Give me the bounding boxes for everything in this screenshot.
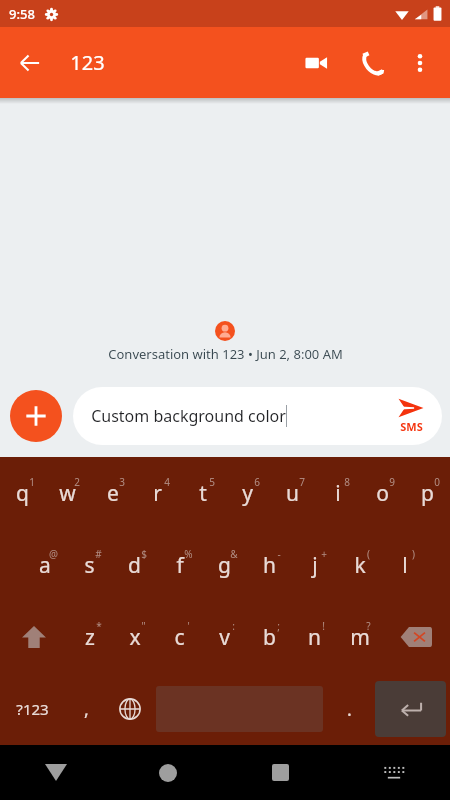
button[interactable]: & bbox=[202, 529, 247, 601]
staticText: o bbox=[376, 479, 389, 508]
staticText: 7 bbox=[299, 475, 305, 489]
button[interactable]: 6 bbox=[225, 457, 270, 529]
staticText: k bbox=[354, 551, 366, 580]
staticText: r bbox=[153, 479, 162, 508]
staticText: 1 bbox=[29, 475, 35, 489]
staticText: @ bbox=[49, 547, 58, 561]
button[interactable]: 1 bbox=[0, 457, 45, 529]
staticText: b bbox=[263, 623, 276, 652]
staticText: . bbox=[347, 697, 352, 722]
staticText: + bbox=[321, 547, 327, 561]
button[interactable]: @ bbox=[22, 529, 67, 601]
button[interactable]: ; bbox=[247, 601, 292, 673]
button[interactable]: Add attachment bbox=[10, 390, 62, 442]
button[interactable]: - bbox=[247, 529, 292, 601]
staticText: ) bbox=[412, 547, 415, 561]
button[interactable]: 4 bbox=[135, 457, 180, 529]
button[interactable]: Back bbox=[6, 39, 54, 87]
staticText: 0 bbox=[434, 475, 440, 489]
staticText: 2 bbox=[74, 475, 80, 489]
staticText: 5 bbox=[209, 475, 215, 489]
button[interactable]: Shift bbox=[0, 601, 67, 673]
button[interactable]: Call bbox=[348, 39, 396, 87]
staticText: l bbox=[402, 551, 408, 580]
staticText: : bbox=[232, 619, 235, 633]
staticText: y bbox=[242, 479, 253, 508]
staticText: e bbox=[107, 479, 119, 508]
button[interactable]: Hide keyboard bbox=[0, 745, 112, 800]
staticText: * bbox=[96, 619, 102, 633]
staticText: ?123 bbox=[16, 699, 49, 719]
button[interactable]: . bbox=[327, 673, 371, 745]
staticText: f bbox=[176, 551, 184, 580]
staticText: i bbox=[335, 479, 341, 508]
staticText: 9 bbox=[389, 475, 395, 489]
button[interactable]: , bbox=[65, 673, 108, 745]
staticText: c bbox=[174, 623, 185, 652]
staticText: j bbox=[312, 551, 318, 580]
button[interactable]: Enter bbox=[375, 681, 446, 737]
staticText: u bbox=[286, 479, 299, 508]
button[interactable]: Switch input method bbox=[337, 745, 450, 800]
staticText: 6 bbox=[254, 475, 260, 489]
staticText: p bbox=[421, 479, 434, 508]
button[interactable]: ' bbox=[157, 601, 202, 673]
button[interactable]: ?123 bbox=[0, 673, 65, 745]
button[interactable]: * bbox=[67, 601, 112, 673]
button[interactable]: 8 bbox=[315, 457, 360, 529]
button[interactable]: 2 bbox=[45, 457, 90, 529]
button[interactable]: ) bbox=[382, 529, 427, 601]
button[interactable]: 5 bbox=[180, 457, 225, 529]
button[interactable]: Send SMS bbox=[380, 398, 442, 434]
staticText: " bbox=[141, 619, 146, 633]
staticText: g bbox=[218, 551, 231, 580]
button[interactable]: Change language bbox=[108, 673, 152, 745]
staticText: q bbox=[16, 479, 29, 508]
staticText: h bbox=[263, 551, 276, 580]
button[interactable]: : bbox=[202, 601, 247, 673]
button[interactable]: 0 bbox=[405, 457, 450, 529]
button[interactable]: 9 bbox=[360, 457, 405, 529]
button[interactable]: Home bbox=[112, 745, 224, 800]
button[interactable]: + bbox=[292, 529, 337, 601]
button[interactable]: # bbox=[67, 529, 112, 601]
staticText: 123 bbox=[70, 49, 105, 76]
button[interactable]: Custom background color bbox=[73, 387, 442, 445]
staticText: 3 bbox=[119, 475, 125, 489]
button[interactable]: % bbox=[157, 529, 202, 601]
staticText: ' bbox=[187, 619, 190, 633]
staticText: Conversation with 123 • Jun 2, 8:00 AM bbox=[108, 345, 343, 363]
staticText: 8 bbox=[344, 475, 350, 489]
staticText: 9:58 bbox=[9, 5, 35, 23]
staticText: & bbox=[230, 547, 238, 561]
staticText: s bbox=[84, 551, 95, 580]
button[interactable]: " bbox=[112, 601, 157, 673]
staticText: d bbox=[128, 551, 141, 580]
button[interactable]: $ bbox=[112, 529, 157, 601]
button[interactable]: Video call bbox=[292, 39, 340, 87]
staticText: a bbox=[39, 551, 51, 580]
staticText: ! bbox=[322, 619, 325, 633]
staticText: SMS bbox=[400, 419, 423, 434]
button[interactable]: ! bbox=[292, 601, 337, 673]
staticText: w bbox=[59, 479, 76, 508]
button[interactable]: ? bbox=[337, 601, 382, 673]
button[interactable]: Backspace bbox=[382, 601, 450, 673]
button[interactable]: More options bbox=[396, 39, 444, 87]
button[interactable]: 3 bbox=[90, 457, 135, 529]
staticText: # bbox=[95, 547, 102, 561]
button[interactable]: 7 bbox=[270, 457, 315, 529]
staticText: ? bbox=[366, 619, 371, 633]
staticText: t bbox=[199, 479, 207, 508]
staticText: - bbox=[277, 547, 281, 561]
button[interactable]: ( bbox=[337, 529, 382, 601]
button[interactable]: Recent apps bbox=[224, 745, 337, 800]
staticText: % bbox=[184, 547, 193, 561]
staticText: v bbox=[219, 623, 230, 652]
staticText: x bbox=[129, 623, 141, 652]
staticText: z bbox=[85, 623, 95, 652]
staticText: 4 bbox=[164, 475, 170, 489]
staticText: $ bbox=[141, 547, 147, 561]
staticText: ; bbox=[277, 619, 280, 633]
